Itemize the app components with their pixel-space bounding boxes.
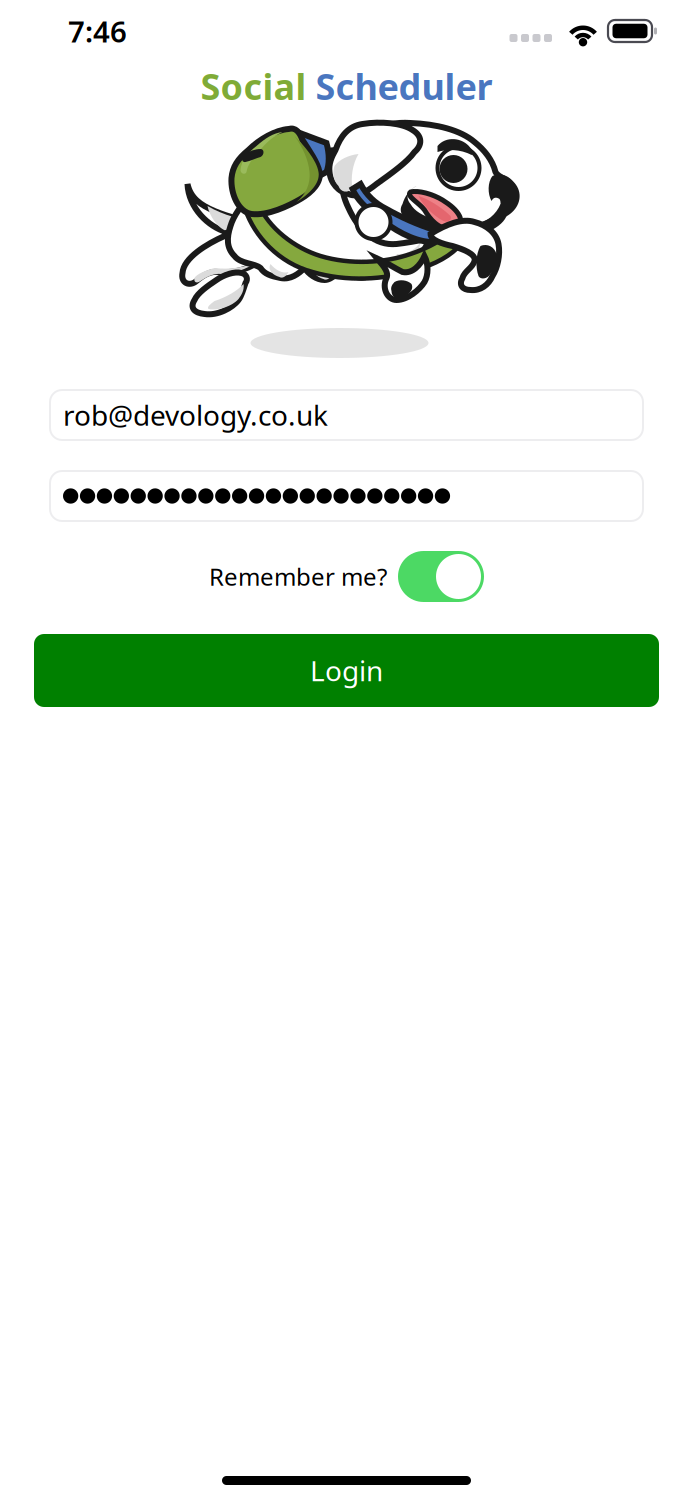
staticText: Scheduler [315,62,492,110]
staticText: Login [310,652,383,689]
button[interactable]: rob@devology.co.uk [50,390,643,440]
button[interactable]: Login [34,634,659,707]
button[interactable]: Remember me [398,551,484,602]
staticText: Social [200,62,315,110]
staticText: 7:46 [68,11,127,50]
button[interactable]: Password [50,471,643,521]
staticText: Remember me? [209,561,387,592]
staticText: rob@devology.co.uk [63,396,328,434]
